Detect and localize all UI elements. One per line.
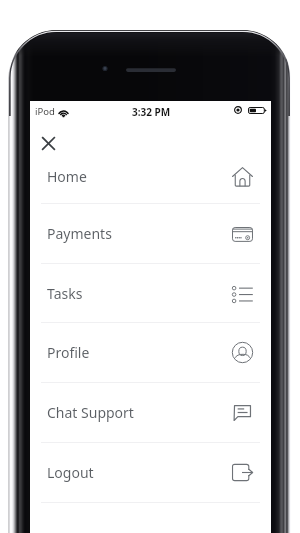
button[interactable]: Close menu: [34, 129, 62, 157]
staticText: Tasks: [47, 284, 83, 303]
staticText: Chat Support: [47, 403, 134, 422]
staticText: Payments: [47, 224, 112, 243]
button[interactable]: Tasks: [30, 263, 271, 323]
button[interactable]: Profile: [30, 322, 271, 382]
staticText: iPod: [35, 105, 55, 118]
button[interactable]: Logout: [30, 442, 271, 502]
button[interactable]: Chat Support: [30, 382, 271, 442]
staticText: Home: [47, 167, 87, 186]
staticText: 3:32 PM: [132, 105, 171, 119]
staticText: Logout: [47, 463, 94, 482]
staticText: Profile: [47, 343, 90, 362]
button[interactable]: Home: [30, 148, 271, 203]
button[interactable]: Payments: [30, 203, 271, 263]
